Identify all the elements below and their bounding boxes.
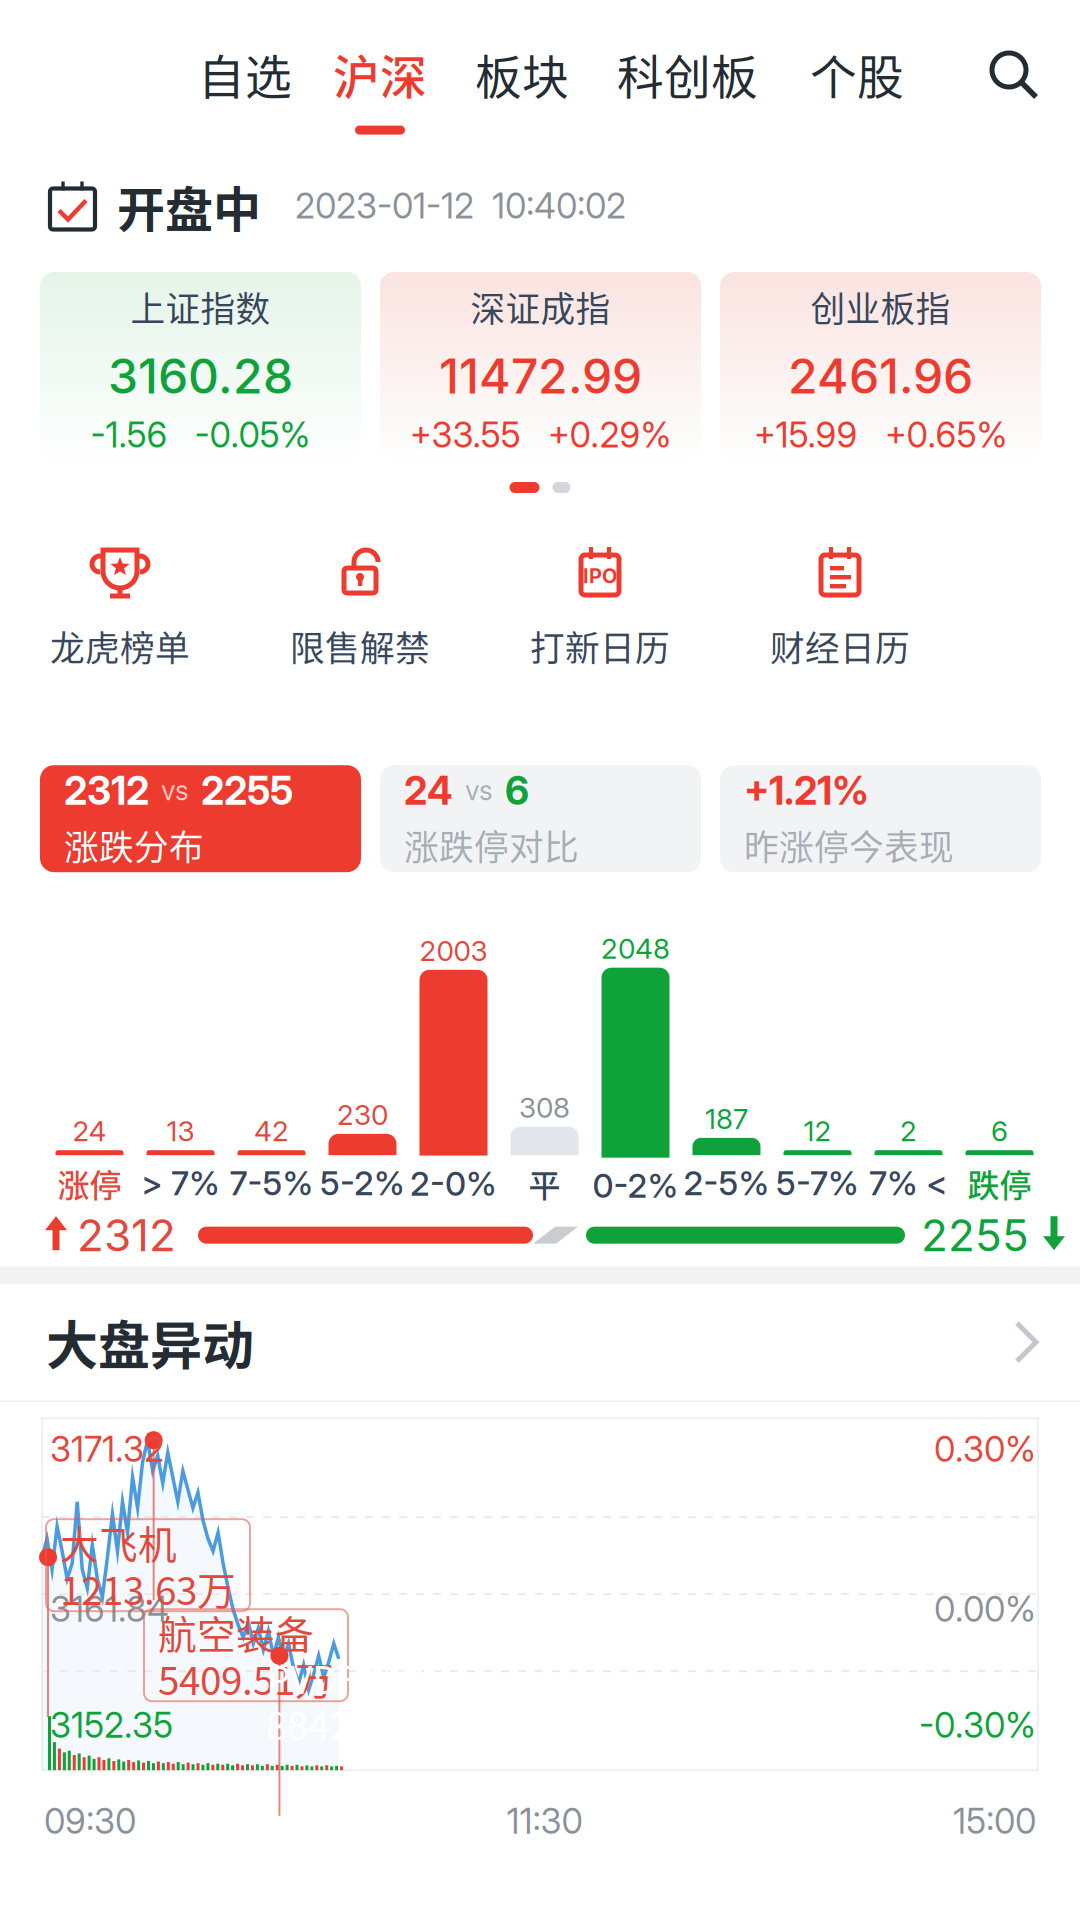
button[interactable]: 上证指数 <box>40 272 361 460</box>
staticText: 5-7% <box>776 1163 859 1203</box>
staticText: -0.30% <box>919 1704 1036 1746</box>
staticText: 2312 <box>64 767 149 814</box>
staticText: 7% < <box>869 1163 948 1203</box>
staticText: 2312 <box>77 1209 176 1262</box>
staticText: 15:00 <box>953 1800 1036 1842</box>
staticText: 308 <box>519 1091 570 1125</box>
button[interactable]: IPO <box>480 541 720 671</box>
staticText: IPO <box>583 564 617 588</box>
button[interactable]: +1.21% <box>720 765 1041 872</box>
staticText: 昨涨停今表现 <box>744 820 954 870</box>
button[interactable]: 限售解禁 <box>240 541 480 671</box>
staticText: 2-0% <box>410 1163 497 1204</box>
staticText: 航空装备 <box>158 1604 314 1660</box>
staticText: 7-5% <box>229 1163 313 1203</box>
staticText: 开盘中 <box>117 171 261 241</box>
staticText: 板块 <box>475 40 569 108</box>
staticText: 自选 <box>198 40 292 108</box>
staticText: 5-2% <box>320 1163 405 1203</box>
staticText: 3152.35 <box>50 1704 173 1746</box>
staticText: 6 <box>505 767 529 814</box>
staticText: 187 <box>705 1102 748 1136</box>
staticText: 2048 <box>601 932 670 966</box>
staticText: 11:30 <box>506 1800 582 1842</box>
staticText: 24 <box>72 1114 106 1148</box>
button[interactable]: 创业板指 <box>720 272 1041 460</box>
staticText: vs <box>465 774 493 807</box>
staticText: 3171.32 <box>50 1428 164 1470</box>
staticText: 12 <box>803 1114 831 1148</box>
staticText: 大飞机 <box>60 1514 177 1570</box>
staticText: 2255 <box>201 767 293 814</box>
button[interactable]: 自选 <box>198 0 292 150</box>
staticText: 2255 <box>921 1209 1029 1262</box>
staticText: 24 <box>404 767 453 814</box>
staticText: vs <box>161 774 189 807</box>
staticText: 跌停 <box>967 1160 1031 1206</box>
staticText: 2 <box>900 1114 917 1148</box>
staticText: 科创板 <box>617 40 758 108</box>
staticText: 230 <box>337 1098 388 1132</box>
staticText: 3161.84 <box>50 1588 169 1630</box>
staticText: 2-5% <box>683 1163 769 1203</box>
staticText: 09:30 <box>44 1800 136 1842</box>
staticText: 限售解禁 <box>290 621 430 671</box>
staticText: 13 <box>166 1114 194 1148</box>
button[interactable]: 24 <box>380 765 701 872</box>
button[interactable]: 2312 <box>40 765 361 872</box>
staticText: 财经日历 <box>770 621 910 671</box>
button[interactable]: 龙虎榜单 <box>0 541 240 671</box>
staticText: 深证成指 <box>470 282 610 332</box>
staticText: 5409.51万 <box>158 1650 334 1706</box>
staticText: +15.99 +0.65% <box>753 414 1007 456</box>
staticText: 涨停 <box>57 1160 121 1206</box>
staticText: 涨跌分布 <box>64 820 204 870</box>
staticText: 3160.28 <box>108 347 293 405</box>
staticText: 0-2% <box>592 1165 678 1206</box>
staticText: +33.55 +0.29% <box>409 414 671 456</box>
button[interactable]: 财经日历 <box>720 541 960 671</box>
staticText: 0.00% <box>934 1588 1036 1630</box>
staticText: > 7% <box>141 1163 220 1203</box>
staticText: 沪深 <box>333 40 427 108</box>
staticText: -1.56 -0.05% <box>90 414 310 456</box>
staticText: 11472.99 <box>439 347 642 405</box>
button[interactable]: 大盘异动 <box>0 1284 1080 1400</box>
button[interactable]: 沪深 <box>333 0 427 150</box>
staticText: 大盘异动 <box>46 1304 254 1380</box>
staticText: 2003 <box>419 934 487 968</box>
staticText: 0.30% <box>934 1428 1036 1470</box>
staticText: 创业板指 <box>810 282 950 332</box>
staticText: PVDF概念 <box>266 1649 438 1705</box>
button[interactable]: 深证成指 <box>380 272 701 460</box>
button[interactable]: 科创板 <box>617 0 758 150</box>
staticText: +1.21% <box>744 767 869 814</box>
staticText: 打新日历 <box>530 621 670 671</box>
staticText: 平 <box>528 1160 560 1206</box>
button[interactable]: 个股 <box>810 0 904 150</box>
staticText: 个股 <box>810 40 904 108</box>
staticText: 42 <box>254 1114 289 1148</box>
staticText: 2461.96 <box>788 347 973 405</box>
staticText: 2023-01-12 10:40:02 <box>295 185 626 227</box>
staticText: 8842.86万 <box>266 1695 442 1751</box>
staticText: 龙虎榜单 <box>50 621 190 671</box>
button[interactable]: 板块 <box>475 0 569 150</box>
button[interactable]: 搜索 <box>986 47 1042 103</box>
staticText: 上证指数 <box>130 282 270 332</box>
staticText: 1213.63万 <box>60 1560 236 1616</box>
staticText: 6 <box>991 1114 1008 1148</box>
staticText: 涨跌停对比 <box>404 820 579 870</box>
